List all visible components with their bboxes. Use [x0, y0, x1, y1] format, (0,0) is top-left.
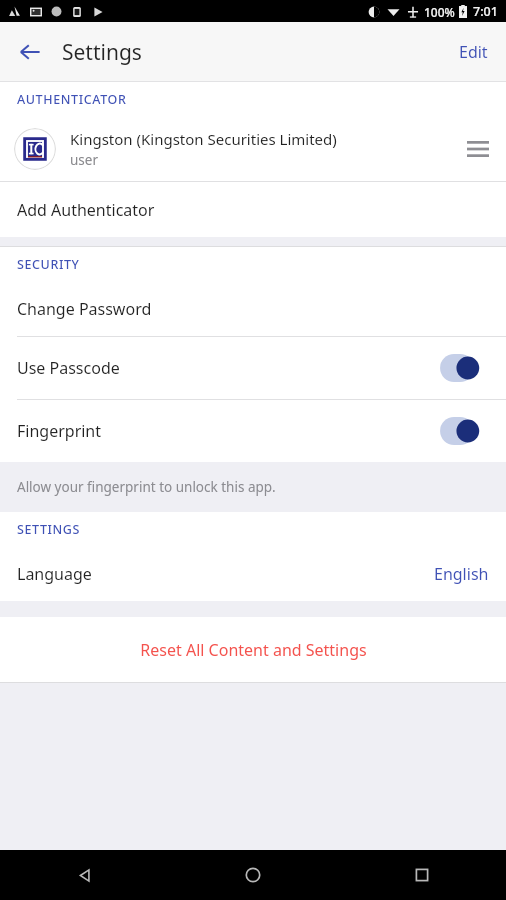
staticText: Change Password	[17, 298, 152, 320]
staticText: user	[70, 151, 98, 169]
button[interactable]: Fingerprint	[0, 400, 506, 462]
button[interactable]: Reset All Content and Settings	[0, 617, 506, 682]
staticText: Settings	[62, 38, 142, 67]
staticText: 100%	[424, 4, 455, 20]
staticText: SECURITY	[17, 256, 80, 273]
button[interactable]: Kingston (Kingston Securities Limited)	[0, 116, 506, 181]
button[interactable]: Edit	[455, 31, 492, 73]
button[interactable]: Back	[60, 851, 108, 899]
staticText: AUTHENTICATOR	[17, 91, 127, 108]
staticText: Reset All Content and Settings	[140, 639, 367, 661]
staticText: Kingston (Kingston Securities Limited)	[70, 129, 337, 149]
button[interactable]: Language	[0, 546, 506, 601]
button[interactable]: Use Passcode	[0, 337, 506, 399]
button[interactable]: Add Authenticator	[0, 182, 506, 237]
staticText: Add Authenticator	[17, 199, 155, 221]
staticText: English	[434, 563, 489, 585]
staticText: Edit	[459, 41, 488, 63]
staticText: 7:01	[473, 3, 498, 20]
button[interactable]: Reorder	[456, 127, 500, 171]
button[interactable]: Home	[229, 851, 277, 899]
button[interactable]: Recents	[398, 851, 446, 899]
button[interactable]: Back	[6, 28, 54, 76]
staticText: Allow your fingerprint to unlock this ap…	[17, 478, 276, 496]
button[interactable]	[439, 351, 493, 385]
staticText: Fingerprint	[17, 420, 102, 442]
button[interactable]: Change Password	[0, 281, 506, 336]
staticText: Language	[17, 563, 92, 585]
staticText: SETTINGS	[17, 521, 81, 538]
staticText: Use Passcode	[17, 357, 120, 379]
button[interactable]	[439, 414, 493, 448]
